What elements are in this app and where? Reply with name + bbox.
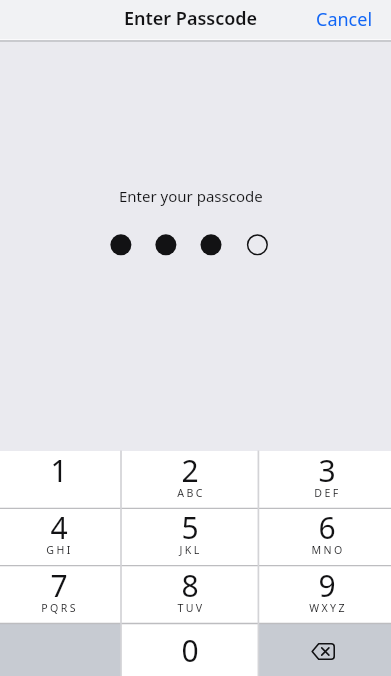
staticText: ABC: [177, 486, 205, 500]
staticText: 3: [318, 450, 336, 491]
staticText: 4: [50, 507, 68, 548]
button[interactable]: 3: [258, 451, 391, 509]
button[interactable]: 5: [121, 508, 258, 565]
staticText: PQRS: [41, 601, 78, 615]
staticText: GHI: [46, 543, 73, 557]
button[interactable]: Delete: [258, 624, 391, 676]
button[interactable]: 2: [121, 451, 258, 509]
button[interactable]: 9: [258, 566, 391, 624]
staticText: 0: [181, 630, 199, 671]
button[interactable]: 7: [0, 566, 121, 624]
staticText: TUV: [177, 601, 205, 615]
staticText: 2: [181, 450, 199, 491]
staticText: 1: [50, 450, 68, 491]
staticText: Cancel: [316, 7, 373, 32]
button[interactable]: 8: [121, 566, 258, 624]
staticText: MNO: [311, 543, 345, 557]
button[interactable]: 1: [0, 451, 121, 509]
button[interactable]: Cancel: [298, 3, 391, 36]
button[interactable]: 6: [258, 508, 391, 565]
button[interactable]: 4: [0, 508, 121, 565]
staticText: WXYZ: [309, 601, 347, 615]
staticText: 9: [318, 565, 336, 606]
staticText: 6: [318, 507, 336, 548]
staticText: JKL: [179, 543, 202, 557]
staticText: Enter Passcode: [124, 6, 258, 31]
button[interactable]: 0: [121, 624, 258, 676]
staticText: 8: [181, 565, 199, 606]
staticText: 5: [181, 507, 199, 548]
staticText: 7: [50, 565, 68, 606]
staticText: Enter your passcode: [119, 186, 263, 206]
staticText: DEF: [314, 486, 341, 500]
